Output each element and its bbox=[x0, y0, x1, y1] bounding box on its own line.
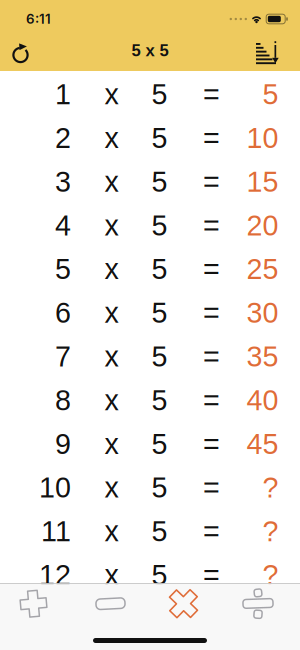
staticText: 11 bbox=[41, 515, 71, 547]
staticText: x bbox=[104, 384, 118, 416]
staticText: x bbox=[104, 472, 118, 504]
staticText: x bbox=[104, 340, 118, 372]
staticText: = bbox=[203, 428, 220, 460]
staticText: 5 bbox=[55, 253, 71, 285]
staticText: 20 bbox=[246, 209, 278, 241]
staticText: 5 bbox=[151, 340, 167, 372]
staticText: = bbox=[203, 122, 220, 154]
button[interactable]: Restart bbox=[5, 33, 39, 67]
staticText: 5 bbox=[151, 209, 167, 241]
staticText: 5 x 5 bbox=[131, 41, 168, 60]
staticText: 30 bbox=[246, 297, 278, 329]
staticText: = bbox=[203, 472, 220, 504]
staticText: x bbox=[104, 122, 118, 154]
staticText: 2 bbox=[55, 122, 71, 154]
button[interactable]: Multiplication bbox=[150, 584, 225, 624]
staticText: = bbox=[203, 559, 220, 591]
button[interactable]: Division bbox=[225, 584, 300, 624]
staticText: 5 bbox=[151, 559, 167, 591]
staticText: 7 bbox=[55, 340, 71, 372]
staticText: = bbox=[203, 384, 220, 416]
staticText: 9 bbox=[55, 428, 71, 460]
staticText: 3 bbox=[55, 166, 71, 198]
button[interactable]: Addition bbox=[0, 584, 75, 624]
staticText: 10 bbox=[39, 472, 71, 504]
staticText: x bbox=[104, 209, 118, 241]
staticText: 5 bbox=[151, 428, 167, 460]
staticText: 25 bbox=[246, 253, 278, 285]
staticText: = bbox=[203, 253, 220, 285]
staticText: 45 bbox=[246, 428, 278, 460]
staticText: 1 bbox=[55, 78, 71, 110]
staticText: ? bbox=[262, 472, 278, 504]
staticText: x bbox=[104, 559, 118, 591]
staticText: 12 bbox=[39, 559, 71, 591]
staticText: 5 bbox=[151, 78, 167, 110]
staticText: 5 bbox=[151, 384, 167, 416]
staticText: 5 bbox=[151, 515, 167, 547]
staticText: = bbox=[203, 515, 220, 547]
staticText: 15 bbox=[246, 166, 278, 198]
staticText: x bbox=[104, 428, 118, 460]
button[interactable]: Subtraction bbox=[75, 584, 150, 624]
staticText: 35 bbox=[246, 340, 278, 372]
staticText: = bbox=[203, 209, 220, 241]
staticText: 8 bbox=[55, 384, 71, 416]
staticText: 5 bbox=[151, 297, 167, 329]
staticText: x bbox=[104, 253, 118, 285]
staticText: ? bbox=[262, 515, 278, 547]
staticText: 5 bbox=[151, 472, 167, 504]
staticText: = bbox=[203, 78, 220, 110]
staticText: x bbox=[104, 166, 118, 198]
staticText: 5 bbox=[151, 253, 167, 285]
staticText: = bbox=[203, 166, 220, 198]
staticText: 5 bbox=[151, 122, 167, 154]
staticText: x bbox=[104, 515, 118, 547]
staticText: 40 bbox=[246, 384, 278, 416]
staticText: 4 bbox=[55, 209, 71, 241]
staticText: x bbox=[104, 78, 118, 110]
staticText: 6 bbox=[55, 297, 71, 329]
staticText: 5 bbox=[262, 78, 278, 110]
staticText: = bbox=[203, 297, 220, 329]
staticText: 5 bbox=[151, 166, 167, 198]
staticText: = bbox=[203, 340, 220, 372]
button[interactable]: Sort bbox=[252, 36, 280, 64]
staticText: ? bbox=[262, 559, 278, 591]
staticText: 6:11 bbox=[26, 11, 51, 27]
staticText: 10 bbox=[246, 122, 278, 154]
staticText: x bbox=[104, 297, 118, 329]
